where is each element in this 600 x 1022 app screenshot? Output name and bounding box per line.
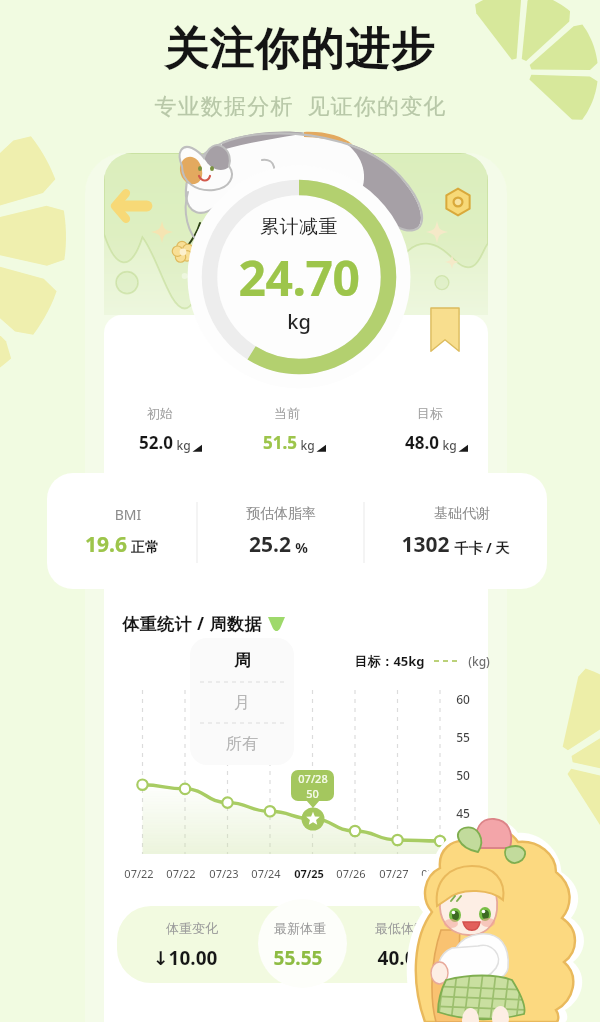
staticText: kg [176, 437, 191, 453]
staticText: 19.6 [85, 530, 127, 559]
staticText: kg [442, 437, 457, 453]
staticText: 目标 [370, 405, 490, 421]
staticText: 07/28 [412, 866, 460, 881]
staticText: 累计减重 [199, 215, 399, 239]
staticText: 体重变化 [122, 920, 262, 936]
staticText: 最新体重 [230, 920, 370, 936]
staticText: 55 [444, 729, 482, 745]
staticText: 24.70 [199, 245, 399, 310]
staticText: 千卡 / 天 [454, 538, 510, 557]
button[interactable]: 月 [190, 682, 294, 723]
staticText: ↓10.00 [115, 945, 255, 971]
staticText: 07/22 [115, 866, 163, 881]
staticText: 月 [234, 693, 250, 713]
staticText: 40.00 [332, 945, 472, 971]
button[interactable]: Back [110, 190, 152, 222]
button[interactable]: 所有 [190, 723, 294, 765]
staticText: kg [300, 437, 315, 453]
staticText: 所有 [226, 734, 258, 754]
staticText: (kg) [468, 653, 490, 669]
staticText: 52.0 [139, 431, 173, 454]
staticText: 初始 [100, 405, 220, 421]
staticText: 07/28 [298, 771, 328, 786]
staticText: 体重统计 / 周数据 [122, 612, 262, 635]
staticText: 07/22 [157, 866, 205, 881]
staticText: 45 [444, 805, 482, 821]
staticText: 专业数据分析 见证你的变化 [154, 90, 447, 120]
staticText: 正常 [131, 539, 159, 557]
staticText: 基础代谢 [382, 505, 542, 523]
staticText: 07/27 [370, 866, 418, 881]
staticText: 关注你的进步 [164, 22, 436, 77]
staticText: 60 [444, 691, 482, 707]
staticText: 目标：45kg [354, 652, 425, 670]
staticText: 07/26 [327, 866, 375, 881]
staticText: 50 [444, 767, 482, 783]
button[interactable]: BMI [47, 473, 547, 589]
staticText: 当前 [227, 405, 347, 421]
button[interactable]: Settings [442, 186, 474, 218]
staticText: 周 [234, 650, 251, 671]
staticText: 50 [306, 786, 319, 801]
staticText: 07/24 [242, 866, 290, 881]
staticText: 1302 [401, 530, 450, 559]
button[interactable] [117, 906, 488, 983]
staticText: 48.0 [405, 431, 439, 454]
staticText: 25.2 [249, 530, 291, 559]
staticText: BMI [48, 505, 208, 524]
staticText: kg [199, 308, 399, 335]
staticText: 07/25 [285, 866, 333, 881]
button[interactable]: 周 [190, 638, 294, 682]
staticText: % [295, 538, 308, 557]
button[interactable]: Bookmark [429, 308, 461, 356]
staticText: 55.55 [228, 945, 368, 971]
staticText: 51.5 [263, 431, 297, 454]
staticText: 预估体脂率 [201, 505, 361, 523]
staticText: 07/23 [200, 866, 248, 881]
staticText: 最低体重 [331, 920, 471, 936]
